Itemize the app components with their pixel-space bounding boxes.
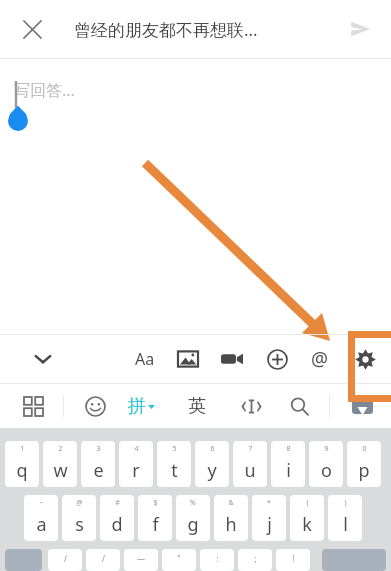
button[interactable]: 7 [233, 441, 267, 487]
staticText: " [177, 553, 181, 564]
button[interactable]: Close [14, 11, 50, 47]
button[interactable]: @ [62, 495, 96, 541]
button[interactable]: Move cursor [234, 389, 268, 423]
button[interactable]: 4 [119, 441, 153, 487]
button[interactable]: ; [238, 549, 272, 571]
button[interactable]: Collapse [26, 342, 60, 376]
staticText: @ [76, 498, 83, 508]
button[interactable]: # [100, 495, 134, 541]
staticText: 曾经的朋友都不再想联... [74, 18, 258, 41]
staticText: 0 [362, 444, 367, 454]
button[interactable]: Keyboard layouts [16, 389, 50, 423]
staticText: ; [254, 553, 257, 564]
staticText: 5 [172, 444, 177, 454]
button[interactable]: / [86, 549, 120, 571]
staticText: — [137, 553, 145, 564]
staticText: t [171, 458, 178, 483]
staticText: 6 [210, 444, 215, 454]
button[interactable]: Shift [5, 549, 42, 571]
button[interactable]: 9 [309, 441, 343, 487]
staticText: / [102, 553, 105, 564]
button[interactable]: Image [171, 342, 205, 376]
staticText: o [321, 458, 332, 483]
staticText: u [244, 458, 256, 483]
staticText: $ [153, 498, 158, 508]
staticText: p [358, 458, 370, 483]
button[interactable]: Insert [260, 342, 294, 376]
button[interactable]: 3 [81, 441, 115, 487]
staticText: & [228, 498, 234, 508]
button[interactable]: Backspace [322, 549, 386, 571]
button[interactable]: ~ [24, 495, 58, 541]
button[interactable]: % [176, 495, 210, 541]
staticText: e [93, 458, 104, 483]
button[interactable]: 英 [188, 395, 206, 418]
button[interactable]: Emoji [78, 389, 112, 423]
button[interactable]: — [124, 549, 158, 571]
staticText: / [64, 553, 67, 564]
staticText: @ [311, 346, 329, 372]
staticText: 7 [248, 444, 253, 454]
staticText: : [216, 553, 219, 564]
staticText: ( [306, 498, 309, 508]
staticText: 8 [286, 444, 291, 454]
staticText: 2 [58, 444, 63, 454]
button[interactable]: " [162, 549, 196, 571]
button[interactable]: 2 [43, 441, 77, 487]
button[interactable]: 0 [347, 441, 381, 487]
staticText: k [302, 512, 312, 537]
staticText: f [152, 512, 159, 537]
staticText: w [53, 458, 68, 483]
staticText: y [207, 458, 217, 483]
button[interactable]: Text style [128, 342, 162, 376]
staticText: d [111, 512, 123, 537]
button[interactable]: * [252, 495, 286, 541]
staticText: 写回答... [14, 79, 75, 101]
staticText: 9 [324, 444, 329, 454]
button[interactable]: Search [282, 389, 316, 423]
staticText: l [343, 512, 348, 537]
staticText: # [115, 498, 120, 508]
button[interactable]: Settings [348, 342, 382, 376]
staticText: 4 [134, 444, 139, 454]
staticText: 英 [188, 395, 206, 418]
staticText: q [16, 458, 28, 483]
button[interactable]: / [48, 549, 82, 571]
staticText: % [190, 498, 196, 508]
button[interactable]: : [200, 549, 234, 571]
staticText: 1 [20, 444, 25, 454]
button[interactable]: 5 [157, 441, 191, 487]
staticText: Aa [135, 348, 155, 370]
button[interactable]: 1 [5, 441, 39, 487]
staticText: j [267, 512, 272, 537]
staticText: 拼 [128, 395, 146, 418]
staticText: g [187, 512, 199, 537]
staticText: i [286, 458, 291, 483]
button[interactable]: ( [290, 495, 324, 541]
button[interactable]: Send [339, 8, 381, 50]
button[interactable]: 6 [195, 441, 229, 487]
staticText: r [132, 458, 140, 483]
staticText: ~ [39, 498, 44, 508]
button[interactable]: $ [138, 495, 172, 541]
staticText: a [36, 512, 47, 537]
staticText: ) [344, 498, 347, 508]
staticText: h [225, 512, 237, 537]
staticText: ! [292, 553, 295, 564]
staticText: * [267, 498, 271, 508]
button[interactable]: Video [215, 342, 249, 376]
staticText: 3 [96, 444, 101, 454]
staticText: s [75, 512, 84, 537]
button[interactable]: & [214, 495, 248, 541]
button[interactable]: 拼 [128, 395, 155, 418]
button[interactable]: Hide keyboard [345, 389, 379, 423]
button[interactable]: ! [276, 549, 310, 571]
button[interactable]: ) [328, 495, 362, 541]
button[interactable]: Mention [303, 342, 337, 376]
button[interactable]: 8 [271, 441, 305, 487]
